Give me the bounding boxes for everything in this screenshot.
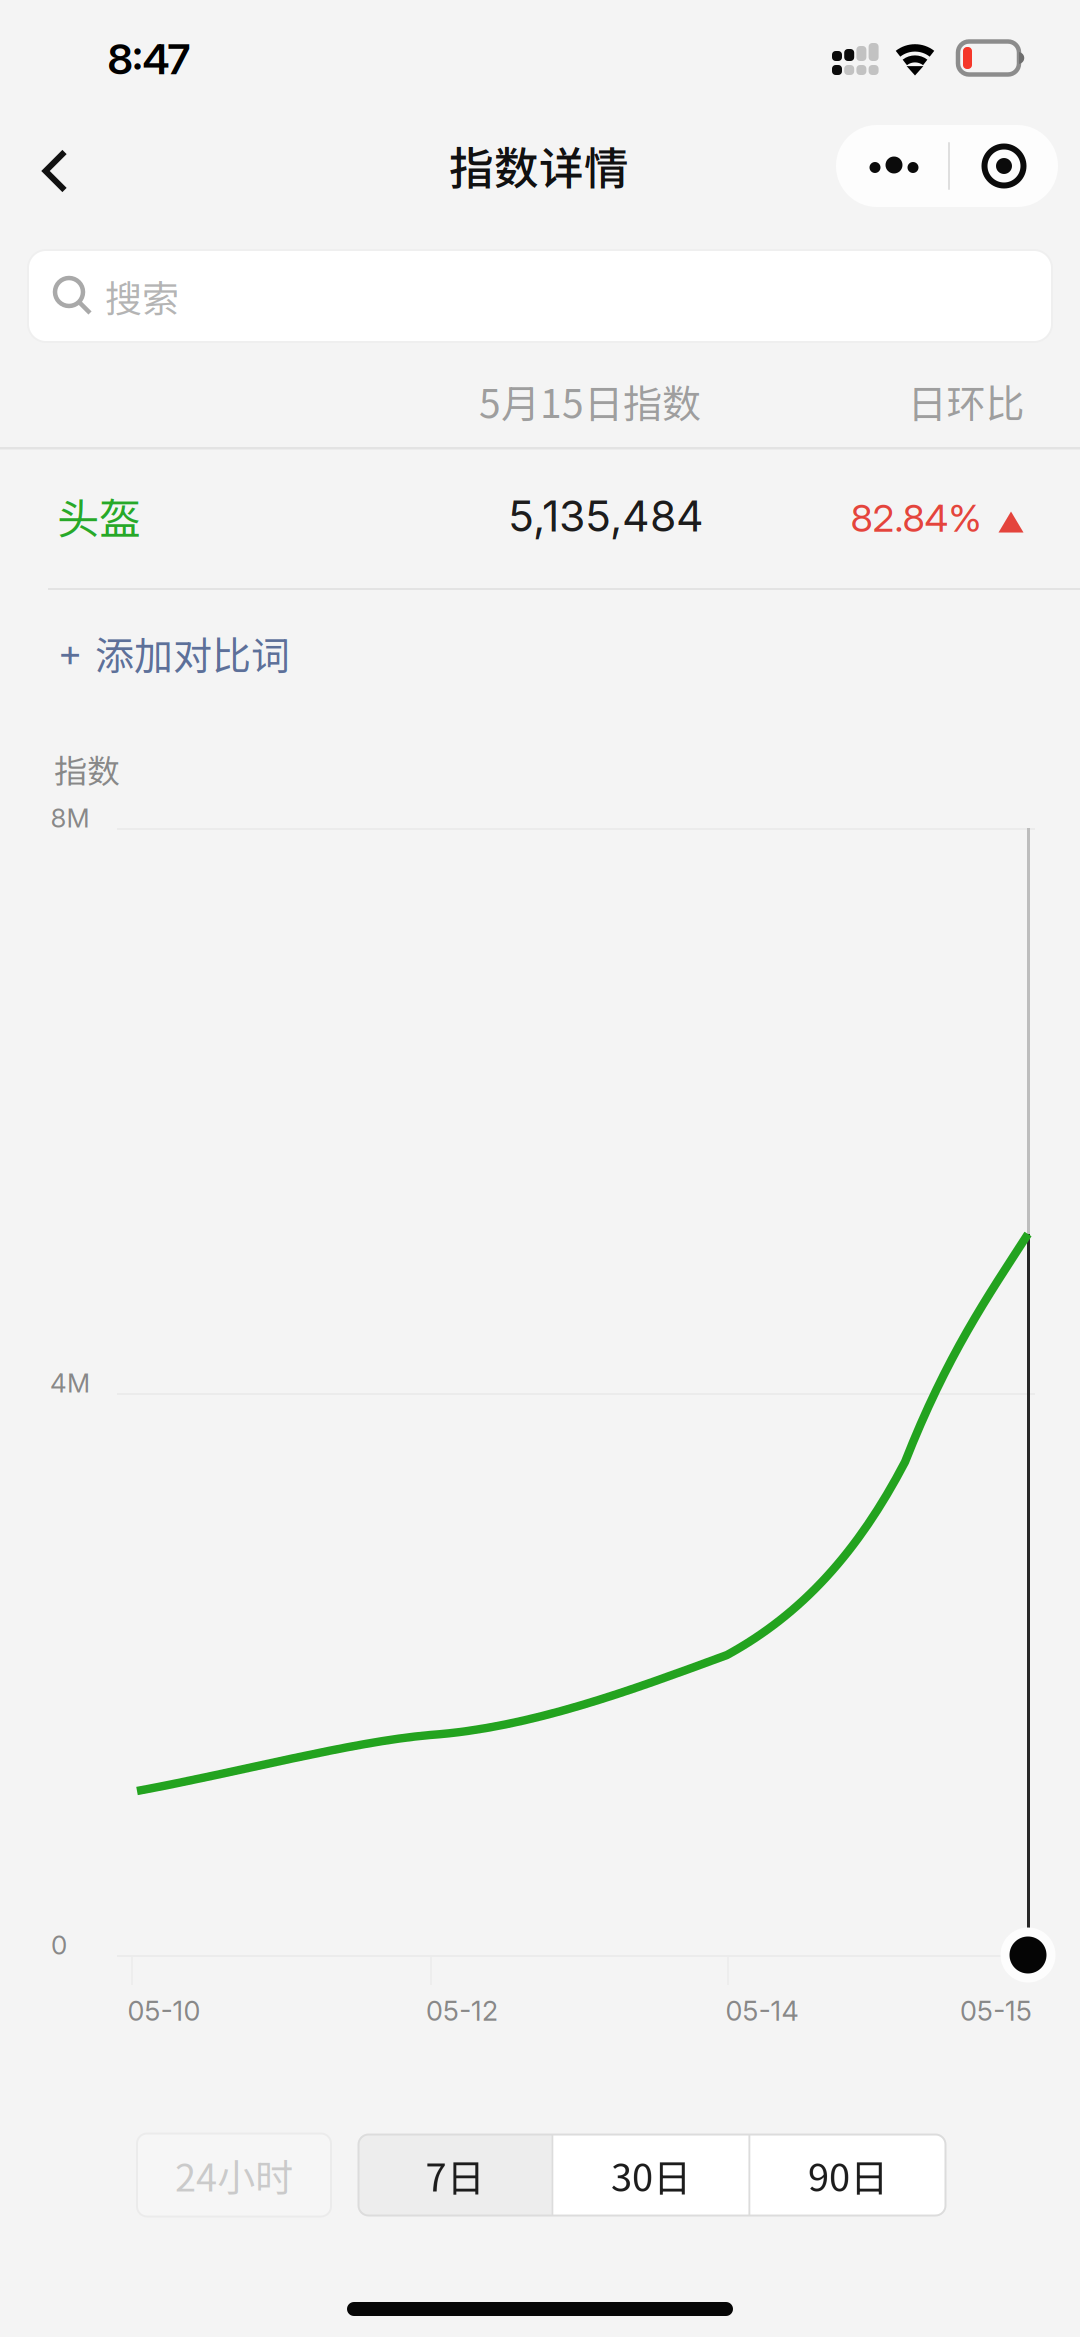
staticText: + [58, 630, 82, 676]
staticText: 指数详情 [449, 133, 629, 197]
staticText: 8M [50, 802, 89, 834]
staticText: 0 [51, 1929, 67, 1961]
staticText: 搜索 [105, 269, 179, 323]
staticText: 5月15日指数 [479, 373, 701, 429]
staticText: 5,135,484 [508, 490, 704, 542]
staticText: 7日 [425, 2147, 484, 2202]
button[interactable]: 90日 [750, 2134, 945, 2215]
staticText: 24小时 [175, 2147, 293, 2202]
button[interactable]: 30日 [553, 2134, 748, 2215]
button[interactable]: Back [9, 125, 101, 217]
button[interactable]: More [836, 125, 948, 207]
staticText: 05-12 [426, 1995, 498, 2027]
staticText: 05-14 [725, 1995, 798, 2027]
button[interactable]: 24小时 [137, 2133, 331, 2216]
staticText: 90日 [808, 2147, 888, 2202]
button[interactable]: + [0, 593, 520, 713]
staticText: 05-15 [960, 1995, 1032, 2027]
staticText: 指数 [54, 745, 120, 793]
staticText: 05-10 [127, 1995, 200, 2027]
button[interactable]: 搜索 [28, 250, 1052, 342]
staticText: 添加对比词 [95, 625, 290, 681]
button[interactable]: Close mini program [950, 125, 1058, 207]
staticText: 82.84% [850, 495, 981, 541]
staticText: 30日 [611, 2147, 691, 2202]
staticText: 日环比 [907, 373, 1024, 429]
button[interactable]: 7日 [358, 2134, 551, 2215]
staticText: 头盔 [57, 486, 141, 546]
staticText: 8:47 [107, 34, 190, 84]
staticText: 4M [50, 1367, 90, 1399]
